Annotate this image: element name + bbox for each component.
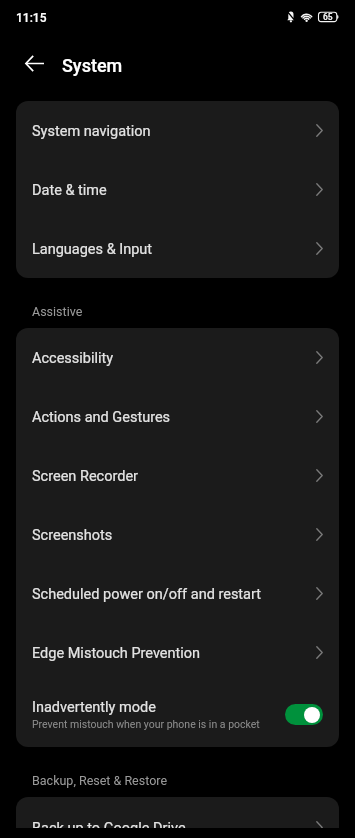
staticText: 65 <box>323 12 333 22</box>
staticText: Assistive <box>32 304 83 319</box>
button[interactable]: Date & time <box>16 160 339 219</box>
staticText: Actions and Gestures <box>32 409 316 426</box>
button[interactable]: Actions and Gestures <box>16 387 339 446</box>
staticText: Languages & Input <box>32 241 316 258</box>
staticText: Prevent mistouch when your phone is in a… <box>32 718 260 730</box>
staticText: 11:15 <box>16 11 47 25</box>
staticText: Date & time <box>32 182 316 199</box>
button[interactable]: Languages & Input <box>16 219 339 278</box>
staticText: Backup, Reset & Restore <box>32 773 168 788</box>
staticText: Screen Recorder <box>32 468 316 485</box>
button[interactable]: Back up to Google Drive <box>16 797 339 838</box>
staticText: Inadvertently mode <box>32 699 156 716</box>
button[interactable]: Screen Recorder <box>16 446 339 505</box>
button[interactable]: Inadvertently mode, on <box>285 704 323 725</box>
button[interactable]: Edge Mistouch Prevention <box>16 623 339 682</box>
button[interactable]: Back <box>14 43 54 83</box>
button[interactable]: Inadvertently mode <box>16 682 339 747</box>
staticText: Scheduled power on/off and restart <box>32 586 316 603</box>
staticText: Accessibility <box>32 350 316 367</box>
staticText: Back up to Google Drive <box>32 820 316 837</box>
button[interactable]: Screenshots <box>16 505 339 564</box>
staticText: System navigation <box>32 123 316 140</box>
button[interactable]: Scheduled power on/off and restart <box>16 564 339 623</box>
staticText: Edge Mistouch Prevention <box>32 645 316 662</box>
button[interactable]: System navigation <box>16 101 339 160</box>
button[interactable]: Accessibility <box>16 328 339 387</box>
staticText: Screenshots <box>32 527 316 544</box>
staticText: System <box>62 55 123 76</box>
